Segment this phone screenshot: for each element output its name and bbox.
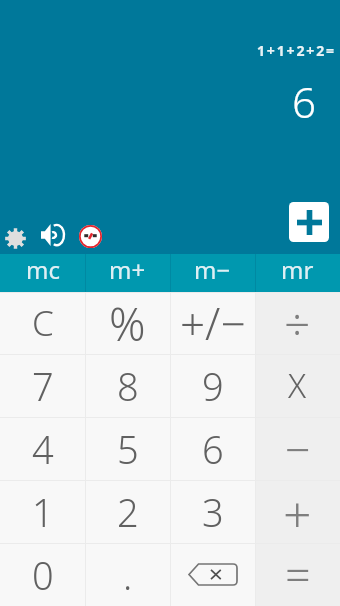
staticText: 1 bbox=[32, 486, 54, 538]
button[interactable]: 4 bbox=[0, 417, 85, 480]
staticText: 9 bbox=[202, 360, 224, 412]
staticText: 5 bbox=[117, 423, 139, 475]
staticText: . bbox=[123, 549, 133, 601]
staticText: + bbox=[283, 480, 312, 543]
button[interactable]: − bbox=[255, 417, 340, 480]
staticText: mr bbox=[281, 253, 314, 286]
button[interactable]: 5 bbox=[85, 417, 170, 480]
staticText: m− bbox=[194, 253, 231, 286]
staticText: m+ bbox=[109, 253, 146, 286]
staticText: mc bbox=[26, 253, 60, 286]
button[interactable]: Remove ads bbox=[76, 222, 105, 251]
staticText: = bbox=[285, 544, 311, 605]
button[interactable]: mr bbox=[255, 254, 340, 292]
button[interactable]: Settings bbox=[1, 224, 30, 253]
button[interactable]: % bbox=[85, 292, 170, 354]
button[interactable]: Sound bbox=[38, 220, 67, 249]
button[interactable]: m− bbox=[170, 254, 255, 292]
staticText: 0 bbox=[32, 549, 54, 601]
button[interactable]: = bbox=[255, 543, 340, 606]
staticText: 7 bbox=[32, 360, 54, 412]
staticText: 6 bbox=[292, 73, 316, 130]
button[interactable]: ÷ bbox=[255, 292, 340, 354]
button[interactable]: X bbox=[255, 354, 340, 417]
button[interactable]: mc bbox=[0, 254, 85, 292]
button[interactable]: 6 bbox=[170, 417, 255, 480]
button[interactable]: 3 bbox=[170, 480, 255, 543]
button[interactable]: C bbox=[0, 292, 85, 354]
button[interactable]: 8 bbox=[85, 354, 170, 417]
button[interactable]: 1 bbox=[0, 480, 85, 543]
staticText: +/− bbox=[180, 293, 246, 353]
button[interactable]: 7 bbox=[0, 354, 85, 417]
button[interactable]: 9 bbox=[170, 354, 255, 417]
button[interactable]: +/− bbox=[170, 292, 255, 354]
staticText: 4 bbox=[32, 423, 54, 475]
staticText: − bbox=[285, 418, 311, 479]
staticText: 1+1+2+2= bbox=[257, 41, 336, 60]
button[interactable]: + bbox=[255, 480, 340, 543]
button[interactable]: Backspace bbox=[170, 543, 255, 606]
staticText: ÷ bbox=[284, 292, 311, 354]
staticText: X bbox=[288, 363, 307, 408]
button[interactable]: . bbox=[85, 543, 170, 606]
staticText: C bbox=[32, 299, 54, 347]
staticText: 8 bbox=[117, 360, 139, 412]
staticText: 3 bbox=[202, 486, 224, 538]
button[interactable]: m+ bbox=[85, 254, 170, 292]
staticText: % bbox=[109, 293, 146, 354]
button[interactable]: Add bbox=[289, 202, 329, 242]
button[interactable]: 2 bbox=[85, 480, 170, 543]
button[interactable]: 0 bbox=[0, 543, 85, 606]
staticText: 2 bbox=[117, 486, 139, 538]
staticText: 6 bbox=[202, 423, 224, 475]
